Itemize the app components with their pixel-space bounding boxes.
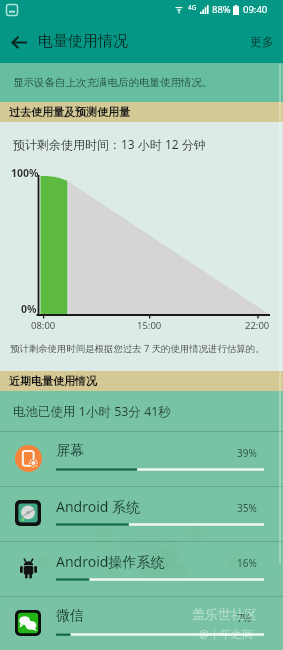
button[interactable]: 更多 xyxy=(250,34,274,49)
button[interactable]: Back xyxy=(0,23,38,61)
staticText: 88% xyxy=(212,3,231,16)
button[interactable]: 屏幕 xyxy=(0,431,283,486)
staticText: 电池已使用 1小时 53分 41秒 xyxy=(13,403,172,420)
button[interactable]: 微信 xyxy=(0,596,283,650)
staticText: 屏幕 xyxy=(56,442,84,460)
staticText: Android 系统 xyxy=(56,497,141,516)
staticText: 100% xyxy=(11,166,39,180)
staticText: 7% xyxy=(237,611,252,625)
staticText: 08:00 xyxy=(31,319,56,332)
staticText: 过去使用量及预测使用量 xyxy=(9,105,130,119)
staticText: 22:00 xyxy=(245,319,270,332)
staticText: 显示设备自上次充满电后的电量使用情况。 xyxy=(13,76,213,89)
staticText: 近期电量使用情况 xyxy=(9,374,97,388)
staticText: 0% xyxy=(21,302,37,316)
staticText: @十年之间 xyxy=(199,626,253,641)
staticText: 更多 xyxy=(250,34,274,49)
staticText: 35% xyxy=(237,501,257,515)
staticText: 09:40 xyxy=(243,3,268,16)
staticText: 16% xyxy=(237,556,257,570)
staticText: 预计剩余使用时间是根据您过去 7 天的使用情况进行估算的。 xyxy=(10,342,265,355)
staticText: Android操作系统 xyxy=(56,552,165,571)
staticText: 盖乐世社区 xyxy=(192,606,257,622)
button[interactable]: Android操作系统 xyxy=(0,541,283,596)
staticText: 电量使用情况 xyxy=(38,32,128,51)
staticText: 4G xyxy=(188,3,197,12)
staticText: 39% xyxy=(237,446,257,460)
staticText: 预计剩余使用时间：13 小时 12 分钟 xyxy=(13,136,206,152)
button[interactable]: Android 系统 xyxy=(0,486,283,541)
staticText: 15:00 xyxy=(137,319,162,332)
staticText: 微信 xyxy=(56,607,84,625)
